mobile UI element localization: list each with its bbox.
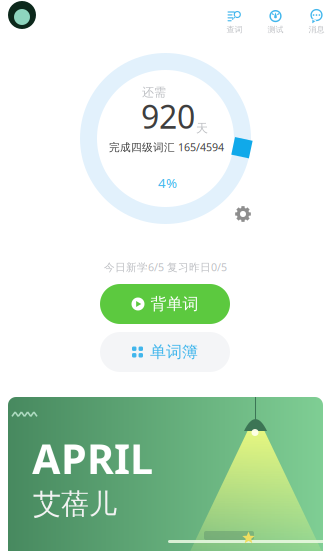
staticText: 艾蓓儿	[33, 487, 117, 521]
button[interactable]: 单词簿	[100, 332, 230, 372]
staticText: 背单词	[150, 294, 198, 314]
staticText: 今日新学6/5 复习昨日0/5	[104, 260, 227, 274]
staticText: 4%	[158, 174, 177, 192]
button[interactable]: 消息	[298, 8, 331, 36]
staticText: 天	[196, 121, 208, 136]
button[interactable]: Settings	[229, 200, 257, 228]
staticText: 920	[141, 95, 195, 137]
staticText: 测试	[267, 25, 283, 34]
staticText: 单词簿	[150, 342, 198, 362]
staticText: 查词	[226, 25, 242, 34]
button[interactable]: 查词	[216, 8, 253, 36]
staticText: APRIL	[32, 431, 153, 486]
button[interactable]: 测试	[257, 8, 294, 36]
button[interactable]: 背单词	[100, 284, 230, 324]
staticText: 消息	[308, 25, 324, 34]
staticText: 还需	[142, 85, 166, 100]
staticText: 完成四级词汇 165/4594	[109, 140, 224, 154]
button[interactable]: Profile	[8, 1, 36, 29]
